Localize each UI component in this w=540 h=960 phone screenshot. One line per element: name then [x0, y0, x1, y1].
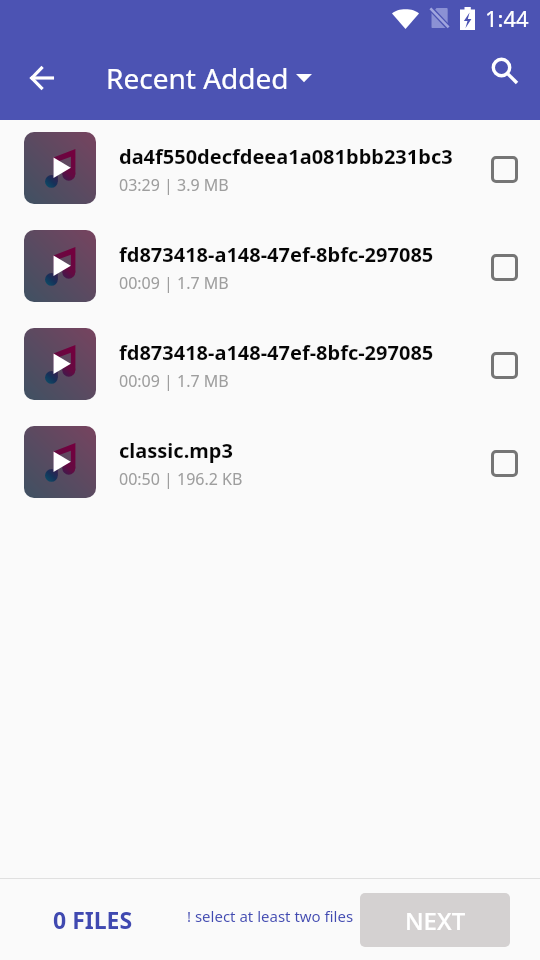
button[interactable]: Recent Added	[106, 59, 312, 97]
button[interactable]: 0 FILES	[53, 904, 133, 935]
staticText: fd873418-a148-47ef-8bfc-297085	[119, 241, 434, 268]
button[interactable]: fd873418-a148-47ef-8bfc-297085	[0, 316, 540, 414]
button[interactable]: ! select at least two files	[187, 906, 354, 926]
staticText: ! select at least two files	[187, 906, 354, 926]
staticText: 00:09 | 1.7 MB	[119, 370, 229, 392]
button[interactable]: Select	[480, 341, 528, 389]
staticText: NEXT	[405, 904, 466, 937]
staticText: 0 FILES	[53, 904, 133, 935]
staticText: 00:09 | 1.7 MB	[119, 272, 229, 294]
button[interactable]: Select	[480, 243, 528, 291]
button[interactable]: Select	[480, 145, 528, 193]
button[interactable]: Back	[20, 56, 64, 100]
button[interactable]: fd873418-a148-47ef-8bfc-297085	[0, 218, 540, 316]
button[interactable]: classic.mp3	[0, 414, 540, 512]
staticText: 00:50 | 196.2 KB	[119, 468, 243, 490]
button[interactable]: da4f550decfdeea1a081bbb231bc3	[0, 120, 540, 218]
button[interactable]: NEXT	[360, 893, 510, 947]
staticText: classic.mp3	[119, 437, 233, 464]
button[interactable]: Select	[480, 439, 528, 487]
staticText: Recent Added	[106, 59, 289, 97]
staticText: 1:44	[485, 3, 529, 32]
staticText: da4f550decfdeea1a081bbb231bc3	[119, 143, 453, 170]
staticText: fd873418-a148-47ef-8bfc-297085	[119, 339, 434, 366]
button[interactable]: Search	[483, 49, 527, 93]
staticText: 03:29 | 3.9 MB	[119, 174, 229, 196]
